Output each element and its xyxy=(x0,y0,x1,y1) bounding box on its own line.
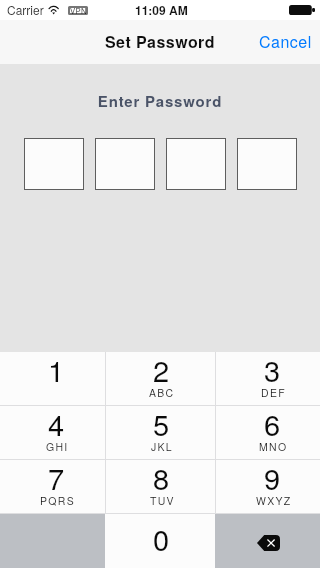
staticText: PQRS xyxy=(40,493,75,508)
staticText: 2 xyxy=(153,349,170,391)
staticText: 3 xyxy=(264,349,281,391)
staticText: 5 xyxy=(153,403,170,445)
button[interactable]: 5 xyxy=(105,406,215,460)
button[interactable]: 3 xyxy=(215,352,320,406)
button[interactable]: 2 xyxy=(105,352,215,406)
staticText: GHI xyxy=(46,439,69,454)
staticText: MNO xyxy=(259,439,288,454)
button[interactable]: 9 xyxy=(215,460,320,514)
staticText: VPN xyxy=(70,5,87,16)
staticText: 8 xyxy=(153,457,170,499)
staticText: 0 xyxy=(153,518,170,560)
button[interactable]: Password digit 2 xyxy=(95,138,155,190)
staticText: 1 xyxy=(48,349,65,391)
staticText: TUV xyxy=(150,493,175,508)
button[interactable]: 8 xyxy=(105,460,215,514)
staticText: Cancel xyxy=(259,30,312,53)
button[interactable]: 1 xyxy=(0,352,105,406)
button[interactable]: 6 xyxy=(215,406,320,460)
staticText: 11:09 AM xyxy=(135,1,188,18)
staticText: JKL xyxy=(151,439,173,454)
button[interactable]: Password digit 4 xyxy=(237,138,297,190)
button[interactable]: Cancel xyxy=(247,20,320,64)
button[interactable]: 0 xyxy=(105,514,215,568)
staticText: 9 xyxy=(264,457,281,499)
staticText: DEF xyxy=(261,385,286,400)
staticText: 7 xyxy=(48,457,65,499)
staticText: 6 xyxy=(264,403,281,445)
button[interactable]: 4 xyxy=(0,406,105,460)
button[interactable]: 7 xyxy=(0,460,105,514)
staticText: Enter Password xyxy=(0,90,320,111)
button[interactable]: Password digit 3 xyxy=(166,138,226,190)
button[interactable]: Delete xyxy=(215,514,320,568)
staticText: Carrier xyxy=(7,1,44,18)
staticText: Set Password xyxy=(105,30,216,53)
staticText: ABC xyxy=(149,385,175,400)
button[interactable]: Password digit 1 xyxy=(24,138,84,190)
staticText: WXYZ xyxy=(256,493,292,508)
staticText: 4 xyxy=(48,403,65,445)
